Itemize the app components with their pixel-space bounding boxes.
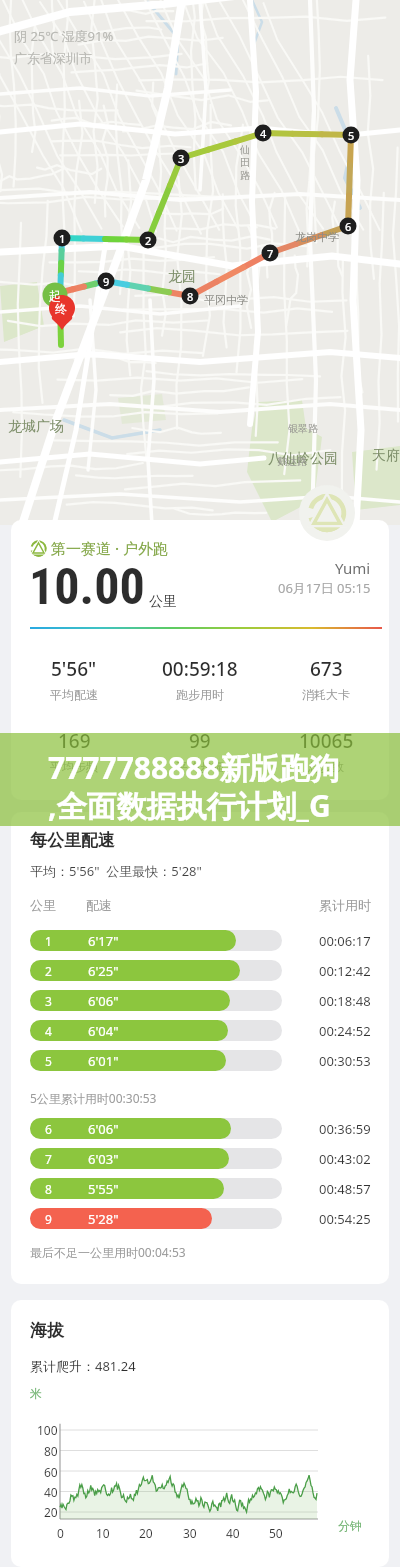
staticText: 673 <box>310 656 343 682</box>
staticText: 米 <box>30 1386 42 1401</box>
staticText: ,全面数据执行计划_G <box>48 785 331 826</box>
staticText: 00:59:18 <box>162 656 238 682</box>
staticText: 80 <box>44 1443 58 1459</box>
staticText: 8 <box>45 1181 52 1197</box>
staticText: 6'01" <box>88 1052 119 1070</box>
staticText: 60 <box>44 1464 58 1480</box>
staticText: 50 <box>269 1525 283 1541</box>
staticText: 4 <box>260 126 267 141</box>
staticText: 天府 <box>372 447 400 465</box>
staticText: 5公里累计用时00:30:53 <box>30 1090 157 1106</box>
staticText: 0 <box>57 1525 64 1541</box>
staticText: 八仙岭公园 <box>268 450 338 468</box>
staticText: 阴 25℃ 湿度91% <box>14 27 114 45</box>
staticText: 5'55" <box>88 1180 119 1198</box>
staticText: 广东省深圳市 <box>14 50 92 66</box>
staticText: 龙岗中学 <box>295 230 339 244</box>
staticText: 平冈中学 <box>204 293 248 307</box>
staticText: 终 <box>55 301 67 316</box>
staticText: 6'06" <box>88 992 119 1010</box>
staticText: 5 <box>45 1053 52 1069</box>
staticText: 8 <box>187 289 194 304</box>
staticText: 平均步幅 <box>176 759 224 774</box>
staticText: 10 <box>96 1525 110 1541</box>
staticText: 06月17日 05:15 <box>278 579 371 597</box>
staticText: 银翠路 <box>288 422 318 435</box>
staticText: 公里 <box>149 593 177 611</box>
staticText: 5'56" <box>51 656 97 682</box>
staticText: 00:36:59 <box>319 1120 371 1138</box>
staticText: 10.00 <box>29 558 145 617</box>
staticText: 6'06" <box>88 1120 119 1138</box>
staticText: 鹅达路 <box>277 455 307 468</box>
staticText: 40 <box>44 1484 58 1500</box>
staticText: 6'25" <box>88 962 119 980</box>
staticText: 2 <box>45 963 52 979</box>
staticText: 5 <box>348 128 355 143</box>
staticText: 30 <box>183 1525 197 1541</box>
staticText: 海拔 <box>30 1320 64 1341</box>
staticText: 3 <box>45 993 52 1009</box>
staticText: 00:24:52 <box>319 1022 371 1040</box>
staticText: 3 <box>178 151 185 166</box>
staticText: 配速 <box>86 897 112 913</box>
staticText: 7 <box>45 1151 52 1167</box>
staticText: 跑步用时 <box>176 687 224 702</box>
staticText: 6'04" <box>88 1022 119 1040</box>
staticText: 累计爬升：481.24 <box>30 1357 136 1375</box>
staticText: 6'03" <box>88 1150 119 1168</box>
staticText: 7 <box>267 246 274 261</box>
staticText: 00:12:42 <box>319 962 371 980</box>
staticText: 00:43:02 <box>319 1150 371 1168</box>
staticText: 99 <box>189 728 211 754</box>
staticText: 00:48:57 <box>319 1180 371 1198</box>
staticText: 平均：5'56" 公里最快：5'28" <box>30 862 202 880</box>
staticText: 00:30:53 <box>319 1052 371 1070</box>
staticText: 起 <box>49 288 61 303</box>
staticText: 公里 <box>30 897 56 913</box>
staticText: 2 <box>145 233 152 248</box>
staticText: 1 <box>45 933 52 949</box>
staticText: 20 <box>139 1525 153 1541</box>
staticText: 20 <box>44 1504 58 1520</box>
staticText: 龙园 <box>168 268 196 286</box>
staticText: 10065 <box>299 728 354 754</box>
staticText: 6 <box>345 219 352 234</box>
staticText: 00:06:17 <box>319 932 371 950</box>
staticText: 5'28" <box>88 1210 119 1228</box>
staticText: 平均配速 <box>50 687 98 702</box>
staticText: 00:54:25 <box>319 1210 371 1228</box>
staticText: 00:18:48 <box>319 992 371 1010</box>
staticText: 1 <box>59 231 66 246</box>
staticText: 9 <box>45 1211 52 1227</box>
staticText: 平均步频 <box>50 759 98 774</box>
staticText: 6'17" <box>88 932 119 950</box>
staticText: 169 <box>58 728 91 754</box>
staticText: 9 <box>103 274 110 289</box>
staticText: 龙城广场 <box>8 418 64 436</box>
staticText: 每公里配速 <box>30 830 115 851</box>
staticText: 6 <box>45 1121 52 1137</box>
staticText: 100 <box>37 1422 58 1438</box>
staticText: 总步数 <box>308 759 344 774</box>
staticText: 累计用时 <box>319 897 371 913</box>
staticText: 7777788888新版跑狗 <box>48 747 340 788</box>
staticText: Yumi <box>335 558 371 578</box>
staticText: 4 <box>45 1023 52 1039</box>
staticText: 40 <box>226 1525 240 1541</box>
staticText: 消耗大卡 <box>302 687 350 702</box>
staticText: 第一赛道 · 户外跑 <box>51 538 168 558</box>
staticText: 分钟 <box>338 1518 362 1533</box>
staticText: 仙 田 路 <box>240 143 250 182</box>
staticText: 最后不足一公里用时00:04:53 <box>30 1244 186 1260</box>
